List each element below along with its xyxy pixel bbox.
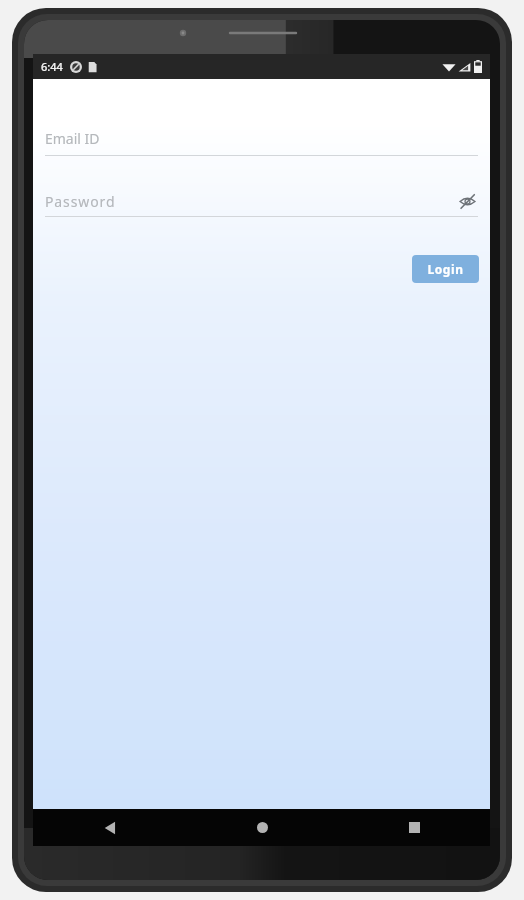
staticText: 6:44: [41, 59, 63, 74]
staticText: Email ID: [45, 129, 100, 148]
staticText: Password: [45, 192, 116, 211]
button[interactable]: Email ID: [33, 129, 490, 156]
button[interactable]: Back: [33, 809, 186, 846]
button[interactable]: Password: [33, 190, 490, 217]
button[interactable]: Recent apps: [338, 809, 490, 846]
button[interactable]: Login: [412, 255, 479, 283]
button[interactable]: Show password: [456, 190, 478, 212]
button[interactable]: Home: [186, 809, 338, 846]
staticText: Login: [427, 261, 464, 277]
